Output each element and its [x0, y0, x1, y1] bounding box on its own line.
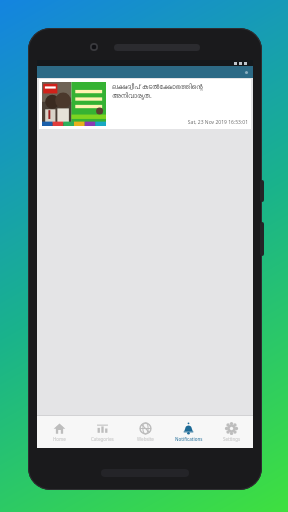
button[interactable]: Website: [124, 416, 167, 448]
staticText: Settings: [223, 436, 241, 442]
staticText: Home: [53, 436, 66, 442]
staticText: ലക്ഷദ്വീപ് കടല്‍ക്ഷോഭത്തിന്റെ അനിവാര്യത.: [112, 82, 203, 100]
staticText: Notifications: [175, 436, 203, 442]
staticText: Website: [137, 436, 154, 442]
button[interactable]: Home: [37, 416, 81, 448]
button[interactable]: Categories: [81, 416, 124, 448]
button[interactable]: Notifications: [167, 416, 210, 448]
button[interactable]: Settings: [210, 416, 253, 448]
staticText: Categories: [91, 436, 114, 442]
button[interactable]: [37, 66, 253, 78]
button[interactable]: ലക്ഷദ്വീപ് കടല്‍ക്ഷോഭത്തിന്റെ അനിവാര്യത.: [39, 79, 251, 129]
staticText: Sat, 23 Nov 2019 16:53:01: [112, 119, 248, 126]
